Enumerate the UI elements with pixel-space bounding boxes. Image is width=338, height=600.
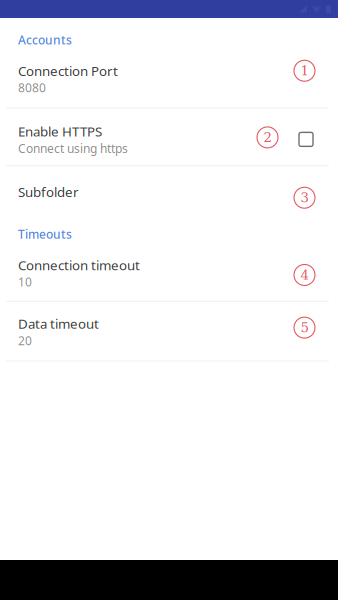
staticText: 3 [300,190,308,205]
button[interactable]: Connection timeout [0,251,338,301]
staticText: Connection Port [18,62,118,80]
staticText: 5 [300,320,308,335]
staticText: Timeouts [18,226,72,242]
staticText: Connection timeout [18,256,140,274]
button[interactable]: Enable HTTPS [0,109,338,165]
staticText: 8080 [18,80,46,95]
staticText: Accounts [18,32,72,48]
staticText: 20 [18,332,32,348]
button[interactable]: Data timeout [0,302,338,360]
staticText: Data timeout [18,315,99,332]
staticText: Enable HTTPS [18,123,102,140]
staticText: 4 [300,267,308,283]
staticText: 1 [300,63,308,78]
staticText: 2 [263,130,271,145]
button[interactable]: Subfolder [0,166,338,213]
staticText: 10 [18,274,32,290]
staticText: Connect using https [18,140,128,156]
button[interactable]: Connection Port [0,57,338,107]
staticText: Subfolder [18,183,79,201]
